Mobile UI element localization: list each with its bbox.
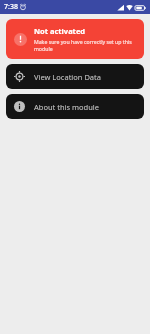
other: Warning bbox=[14, 33, 27, 46]
staticText: Not activated bbox=[34, 26, 86, 36]
staticText: About this module bbox=[34, 102, 100, 112]
button[interactable]: View Location Data bbox=[6, 64, 144, 89]
button[interactable]: Warning bbox=[6, 19, 144, 59]
staticText: View Location Data bbox=[34, 72, 101, 82]
staticText: Make sure you have correctly set up this… bbox=[34, 38, 136, 52]
staticText: 7:38 bbox=[4, 2, 18, 12]
button[interactable]: About this module bbox=[6, 94, 144, 119]
